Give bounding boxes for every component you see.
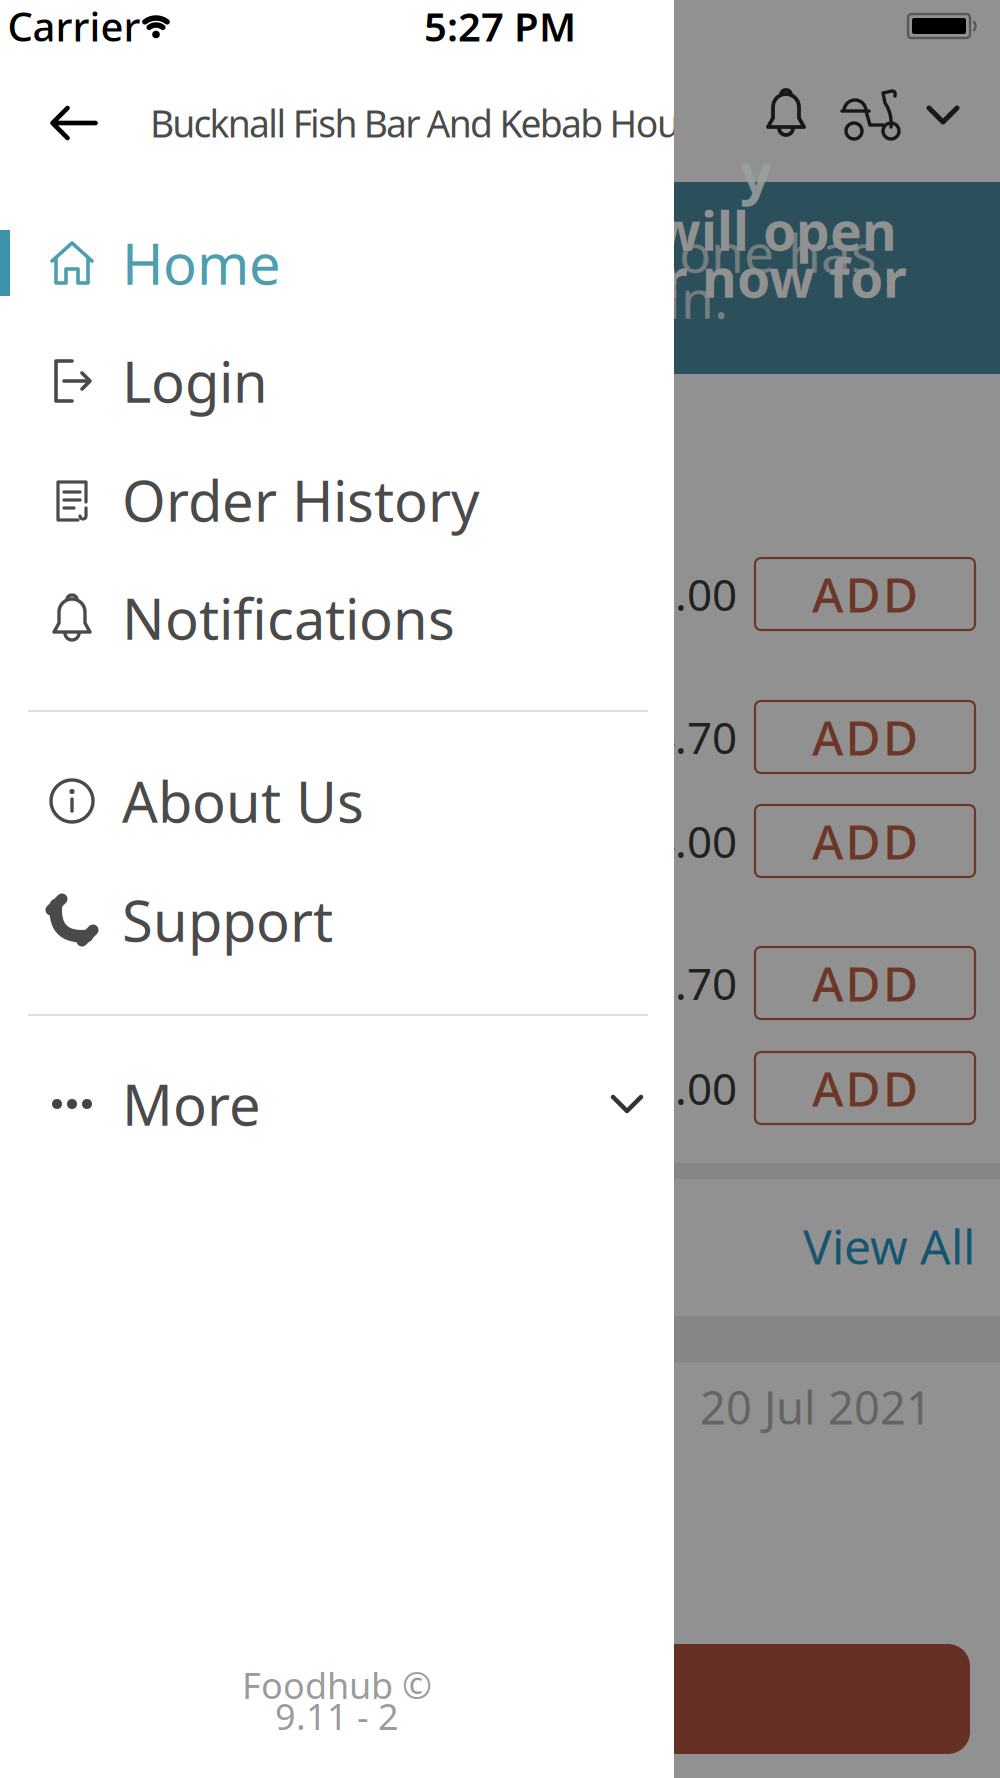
button[interactable]: Notifications	[0, 563, 674, 673]
staticText: ADD	[812, 1056, 918, 1120]
staticText: Support	[122, 883, 333, 957]
button[interactable]: ADD	[755, 701, 975, 773]
button[interactable]: Home	[0, 208, 674, 318]
button[interactable]: Expand	[926, 101, 960, 129]
staticText: About Us	[122, 764, 364, 838]
button[interactable]: ADD	[755, 947, 975, 1019]
staticText: 9.11 - 2	[275, 1692, 399, 1740]
staticText: 4.00	[650, 812, 737, 870]
staticText: Bucknall Fish Bar And Kebab House	[150, 98, 715, 148]
staticText: Carrier	[7, 0, 140, 52]
staticText: Home	[122, 226, 281, 300]
button[interactable]: Delivery	[842, 85, 902, 141]
staticText: Order History	[122, 463, 480, 537]
staticText: Login	[122, 344, 268, 418]
staticText: y	[740, 135, 772, 209]
staticText: 3.70	[650, 954, 737, 1012]
staticText: View All	[803, 1214, 975, 1278]
staticText: 5:27 PM	[424, 0, 576, 52]
staticText: ADD	[812, 951, 918, 1015]
staticText: closed and will open	[356, 195, 897, 265]
button[interactable]: Back	[50, 106, 97, 140]
button[interactable]: Order History	[0, 445, 674, 555]
button[interactable]: About Us	[0, 746, 674, 856]
button[interactable]: ADD	[755, 558, 975, 630]
staticText: do well, if one has	[426, 217, 877, 287]
staticText: ADD	[812, 809, 918, 873]
staticText: order now for	[542, 242, 907, 312]
staticText: ADD	[812, 705, 918, 769]
staticText: Notifications	[122, 581, 455, 655]
button[interactable]: Login	[0, 326, 674, 436]
button[interactable]: More	[0, 1049, 674, 1159]
staticText: 6.00	[650, 1059, 737, 1117]
staticText: Foodhub ©	[242, 1661, 432, 1709]
button[interactable]: Support	[0, 865, 674, 975]
button[interactable]: View All	[675, 1214, 975, 1278]
staticText: More	[122, 1067, 261, 1141]
staticText: 20 Jul 2021	[700, 1377, 932, 1437]
button[interactable]: View Basket	[30, 1644, 970, 1754]
staticText: 5.00	[650, 565, 737, 623]
staticText: ADD	[812, 562, 918, 626]
staticText: in.	[667, 263, 728, 333]
staticText: 4.70	[650, 708, 737, 766]
button[interactable]: ADD	[755, 1052, 975, 1124]
button[interactable]: Notifications	[760, 87, 812, 139]
button[interactable]: ADD	[755, 805, 975, 877]
